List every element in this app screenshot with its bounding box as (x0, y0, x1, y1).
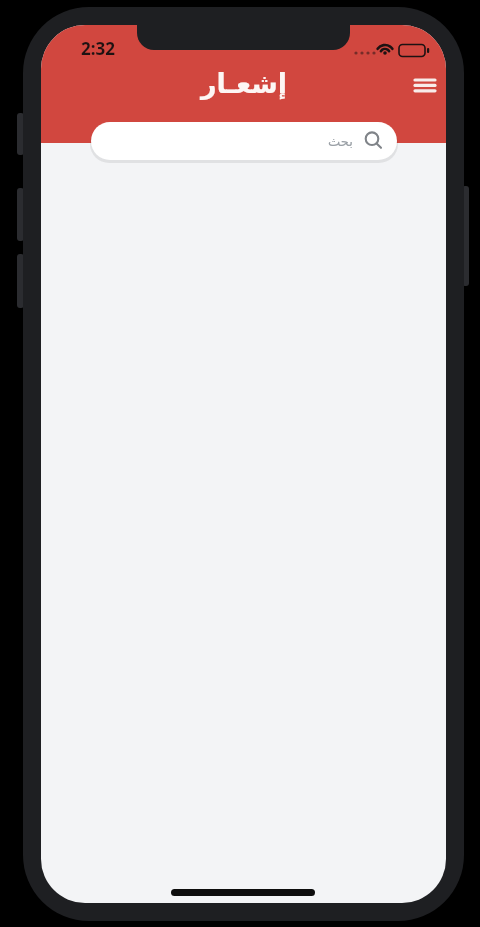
button[interactable] (405, 70, 445, 100)
button[interactable]: بحث (91, 122, 397, 160)
staticText: 2:32 (81, 37, 115, 60)
staticText: بحث (328, 134, 353, 149)
staticText: إشعـار (201, 68, 287, 99)
